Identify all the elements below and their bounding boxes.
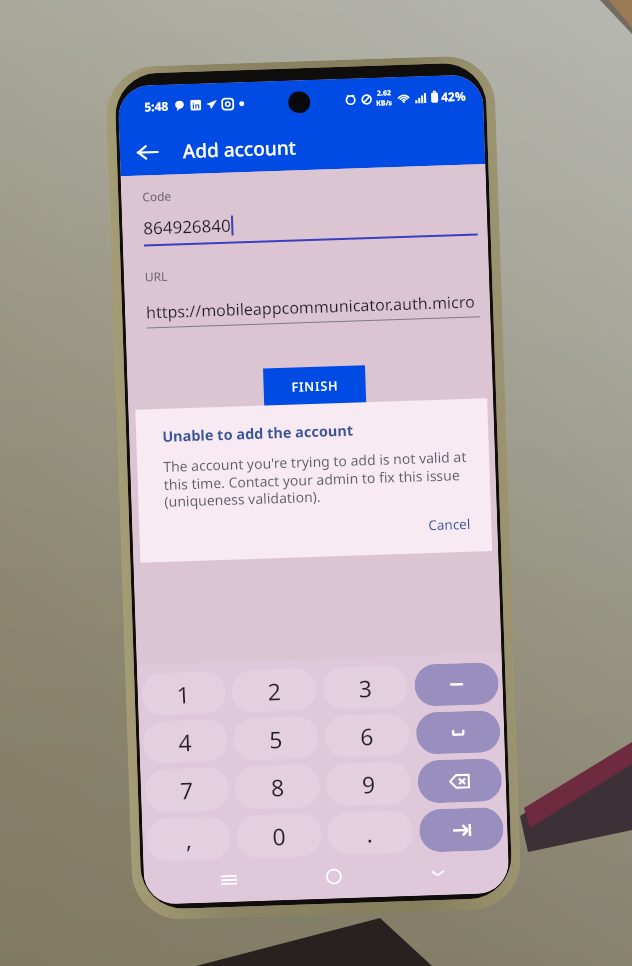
staticText: 6 bbox=[360, 720, 375, 751]
staticText: 5 bbox=[269, 723, 284, 754]
button[interactable]: . bbox=[327, 810, 413, 856]
staticText: 0 bbox=[272, 820, 287, 851]
button[interactable]: Backspace bbox=[417, 758, 502, 804]
button[interactable]: Home bbox=[314, 859, 353, 894]
staticText: 4 bbox=[178, 726, 193, 758]
button[interactable]: Hide keyboard bbox=[418, 855, 457, 891]
button[interactable]: 8 bbox=[234, 764, 321, 810]
button[interactable]: Recents bbox=[209, 862, 248, 898]
staticText: FINISH bbox=[291, 377, 339, 396]
button[interactable]: 4 bbox=[143, 719, 228, 764]
button[interactable]: 1 bbox=[141, 671, 226, 716]
staticText: 7 bbox=[179, 774, 194, 805]
staticText: 5:48 bbox=[144, 98, 168, 114]
staticText: 2.62 bbox=[377, 88, 391, 99]
staticText: 8 bbox=[270, 771, 285, 802]
button[interactable]: 7 bbox=[144, 767, 230, 813]
staticText: Code bbox=[142, 188, 171, 205]
staticText: 3 bbox=[358, 672, 373, 704]
staticText: in bbox=[192, 99, 200, 111]
button[interactable]: , bbox=[146, 816, 231, 862]
staticText: 42% bbox=[441, 88, 466, 104]
button[interactable]: Back bbox=[125, 130, 170, 175]
button[interactable]: Minus bbox=[414, 662, 499, 707]
button[interactable]: Tab bbox=[419, 807, 504, 853]
staticText: 2 bbox=[267, 675, 282, 707]
button[interactable]: 3 bbox=[322, 665, 408, 710]
staticText: Cancel bbox=[428, 515, 472, 534]
staticText: 9 bbox=[361, 768, 376, 799]
staticText: Unable to add the account bbox=[162, 420, 353, 446]
staticText: URL bbox=[145, 268, 168, 284]
staticText: Add account bbox=[182, 134, 297, 164]
button[interactable]: Cancel bbox=[422, 513, 478, 536]
staticText: https://mobileappcommunicator.auth.micro bbox=[146, 291, 475, 323]
button[interactable]: 5 bbox=[233, 716, 319, 761]
button[interactable]: 0 bbox=[236, 813, 322, 859]
staticText: , bbox=[185, 823, 193, 854]
staticText: . bbox=[366, 817, 374, 848]
button[interactable]: 6 bbox=[324, 713, 410, 758]
button[interactable]: 2 bbox=[231, 668, 317, 713]
staticText: KB/s bbox=[376, 98, 392, 109]
button[interactable]: FINISH bbox=[263, 365, 366, 407]
staticText: 1 bbox=[176, 678, 191, 710]
staticText: 864926840 bbox=[143, 214, 232, 239]
staticText: The account you're trying to add is not … bbox=[163, 447, 468, 511]
button[interactable]: 9 bbox=[325, 761, 411, 807]
button[interactable]: Space bbox=[415, 710, 501, 755]
